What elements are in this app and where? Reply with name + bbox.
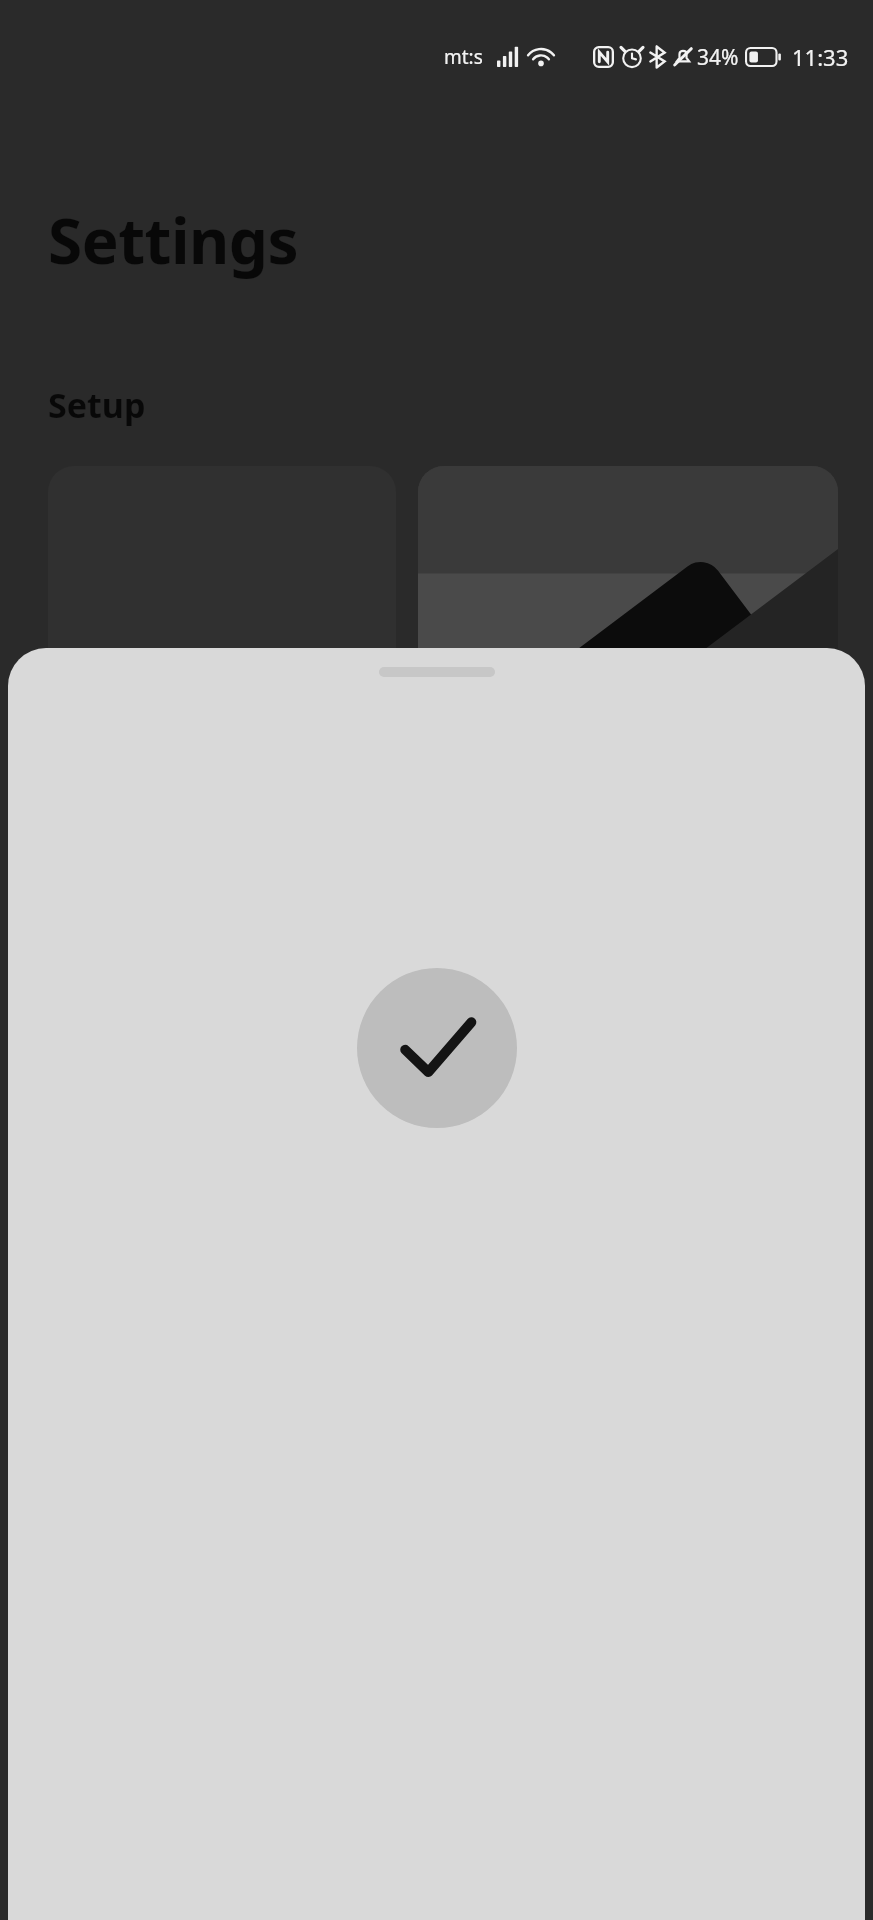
staticText: 11:33 [792, 42, 849, 72]
staticText: mt:s [444, 44, 483, 70]
staticText: Settings [48, 198, 299, 282]
button[interactable] [418, 466, 838, 896]
staticText: 34% [697, 43, 739, 72]
button[interactable]: Success [357, 968, 517, 1128]
staticText: Setup [48, 382, 146, 428]
button[interactable] [48, 466, 396, 896]
